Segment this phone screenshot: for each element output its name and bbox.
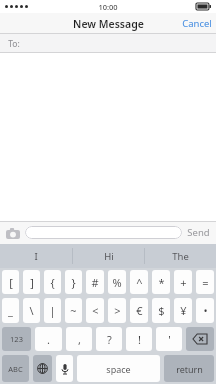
button[interactable]: % [108,270,126,294]
button[interactable]: \ [23,298,40,323]
staticText: I [34,250,38,263]
staticText: + [180,275,187,290]
button[interactable]: Cancel [182,17,212,30]
button[interactable]: ~ [65,298,82,323]
staticText: • [203,303,208,318]
staticText: . [47,332,50,347]
staticText: Hi [104,250,114,263]
staticText: ^ [136,275,143,290]
button[interactable]: [ [2,270,19,294]
button[interactable]: _ [2,298,19,323]
button[interactable]: Take photo [5,225,21,241]
staticText: { [50,275,55,290]
button[interactable]: 123 [2,327,31,351]
staticText: 123 [10,334,23,344]
button[interactable]: Backspace [186,327,214,351]
button[interactable]: Hi [73,244,144,268]
button[interactable]: return [164,355,214,382]
button[interactable]: ? [96,327,122,351]
button[interactable]: = [196,270,214,294]
button[interactable] [25,226,182,239]
staticText: _ [8,303,13,318]
staticText: * [158,275,165,290]
button[interactable]: $ [152,298,170,323]
button[interactable]: Send [186,226,211,239]
button[interactable]: ' [156,327,182,351]
staticText: 10:00 [98,2,118,12]
button[interactable]: | [44,298,61,323]
button[interactable]: . [35,327,62,351]
button[interactable]: ! [126,327,152,351]
button[interactable]: , [66,327,92,351]
staticText: > [114,303,121,318]
button[interactable]: ] [23,270,40,294]
staticText: ~ [70,303,77,318]
staticText: \ [29,303,34,318]
staticText: , [78,332,81,347]
staticText: | [49,303,56,318]
staticText: ¥ [180,303,187,318]
button[interactable]: < [86,298,104,323]
button[interactable]: Change keyboard [33,355,52,382]
button[interactable]: Dictate [56,355,73,382]
staticText: space [106,363,131,375]
staticText: Send [187,226,210,239]
staticText: ! [138,332,141,347]
button[interactable]: • [196,298,214,323]
button[interactable]: ABC [2,355,29,382]
staticText: € [136,303,143,318]
button[interactable]: ¥ [174,298,192,323]
button[interactable]: > [108,298,126,323]
button[interactable]: + [174,270,192,294]
staticText: } [71,275,76,290]
staticText: New Message [73,17,144,31]
staticText: The [172,250,189,263]
staticText: = [202,275,209,290]
button[interactable]: I [0,244,72,268]
button[interactable]: * [152,270,170,294]
staticText: return [176,363,203,375]
button[interactable]: # [86,270,104,294]
button[interactable]: } [65,270,82,294]
button[interactable]: { [44,270,61,294]
staticText: Cancel [182,17,212,30]
staticText: % [112,275,122,290]
staticText: # [91,275,99,290]
staticText: < [92,303,99,318]
button[interactable]: The [145,244,216,268]
button[interactable]: ^ [130,270,148,294]
button[interactable]: space [77,355,160,382]
staticText: [ [9,275,13,290]
button[interactable]: € [130,298,148,323]
staticText: $ [158,303,165,318]
staticText: ] [30,275,34,290]
button[interactable]: To: [0,34,216,53]
staticText: ? [107,332,112,347]
staticText: ' [168,332,171,347]
staticText: ABC [8,364,23,374]
staticText: To: [8,38,20,50]
